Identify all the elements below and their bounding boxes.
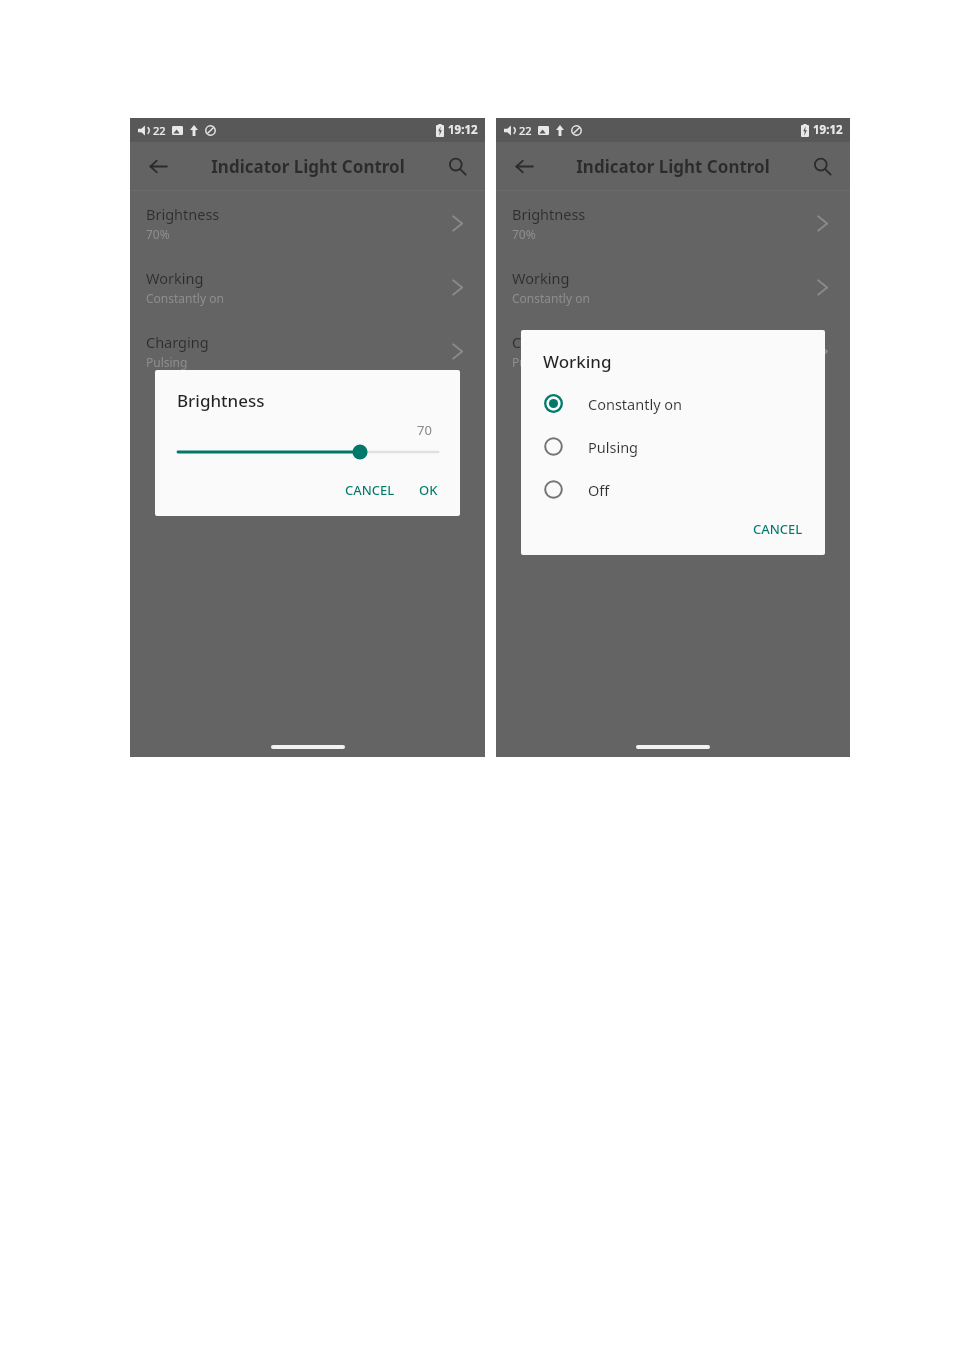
staticText: 70% — [146, 226, 170, 242]
button[interactable]: Search — [441, 150, 473, 182]
button[interactable]: Working — [130, 255, 485, 319]
button[interactable]: Charging — [496, 319, 850, 383]
staticText: Off — [588, 480, 610, 500]
staticText: Indicator Light Control — [211, 155, 405, 178]
staticText: Working — [512, 268, 570, 288]
button[interactable]: Back — [508, 150, 540, 182]
staticText: Working — [146, 268, 204, 288]
staticText: Constantly on — [512, 290, 590, 306]
staticText: Working — [543, 350, 612, 373]
button[interactable] — [175, 443, 441, 461]
staticText: Constantly on — [588, 394, 683, 414]
button[interactable]: Off — [521, 468, 825, 511]
staticText: Charging — [146, 332, 209, 352]
staticText: Pulsing — [146, 354, 188, 370]
button[interactable]: Search — [806, 150, 838, 182]
button[interactable]: CANCEL — [745, 511, 811, 547]
staticText: Brightness — [177, 389, 265, 412]
button[interactable]: Brightness — [130, 191, 485, 255]
staticText: Charging — [512, 332, 575, 352]
staticText: 22 — [519, 123, 532, 138]
staticText: Pulsing — [512, 354, 554, 370]
staticText: 22 — [153, 123, 166, 138]
staticText: CANCEL — [753, 520, 803, 538]
button[interactable]: Back — [142, 150, 174, 182]
staticText: Brightness — [512, 204, 586, 224]
staticText: Constantly on — [146, 290, 224, 306]
button[interactable]: Constantly on — [521, 382, 825, 425]
staticText: OK — [419, 481, 438, 499]
button[interactable]: OK — [411, 472, 446, 508]
staticText: 19:12 — [448, 122, 478, 138]
staticText: Brightness — [146, 204, 220, 224]
staticText: 19:12 — [813, 122, 843, 138]
staticText: 70% — [512, 226, 536, 242]
button[interactable]: Working — [496, 255, 850, 319]
staticText: 70 — [417, 421, 432, 439]
button[interactable]: Pulsing — [521, 425, 825, 468]
staticText: CANCEL — [345, 481, 395, 499]
button[interactable]: CANCEL — [337, 472, 403, 508]
button[interactable]: Brightness — [496, 191, 850, 255]
staticText: Pulsing — [588, 437, 639, 457]
staticText: Indicator Light Control — [576, 155, 770, 178]
button[interactable]: Charging — [130, 319, 485, 383]
